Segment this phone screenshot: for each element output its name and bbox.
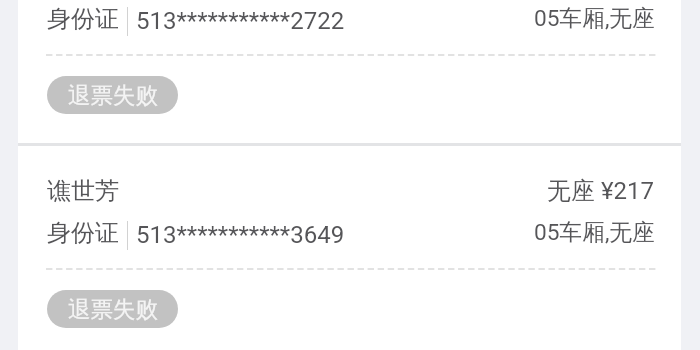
button[interactable]: 乘客车票 [18,0,681,143]
button[interactable]: 乘客车票 [18,146,681,350]
button[interactable]: 退票失败 [47,290,178,328]
staticText: 谯世芳 [47,176,119,206]
staticText: 513***********3649 [136,221,345,249]
staticText: 513***********2722 [136,7,345,35]
button[interactable]: 退票失败 [47,76,178,114]
staticText: 退票失败 [68,295,158,323]
staticText: 05车厢,无座 [534,218,655,247]
staticText: 身份证 [47,218,119,248]
staticText: 无座 ¥217 [547,176,655,206]
staticText: 身份证 [47,4,119,34]
staticText: 05车厢,无座 [534,4,655,33]
staticText: 退票失败 [68,81,158,109]
